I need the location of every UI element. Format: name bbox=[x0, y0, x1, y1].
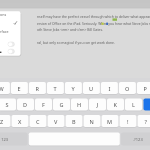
button[interactable] bbox=[0, 0, 150, 150]
